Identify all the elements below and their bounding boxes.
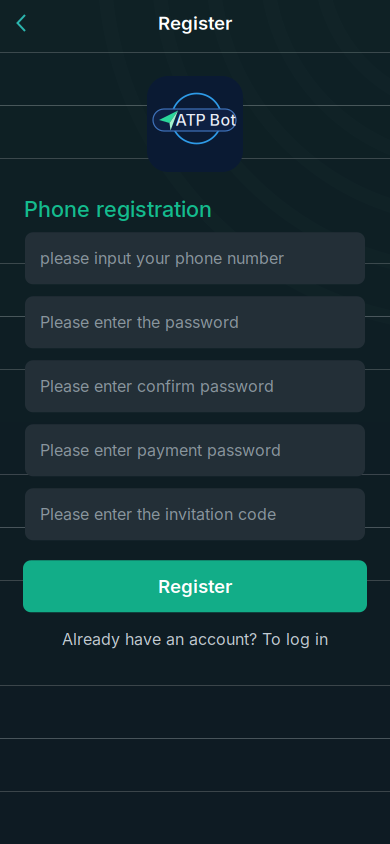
staticText: Already have an account? To log in (62, 630, 328, 649)
staticText: ATP Bot (175, 110, 235, 130)
staticText: please input your phone number (40, 249, 284, 268)
staticText: Phone registration (24, 196, 212, 222)
button[interactable]: Already have an account? To log in (62, 626, 328, 652)
staticText: Please enter payment password (40, 441, 281, 460)
staticText: Please enter the invitation code (40, 505, 276, 524)
button[interactable]: Back (6, 7, 38, 39)
button[interactable]: Register (23, 560, 367, 612)
staticText: Please enter the password (40, 313, 239, 332)
staticText: Register (158, 575, 232, 598)
staticText: Register (158, 12, 232, 34)
staticText: Please enter confirm password (40, 377, 274, 396)
